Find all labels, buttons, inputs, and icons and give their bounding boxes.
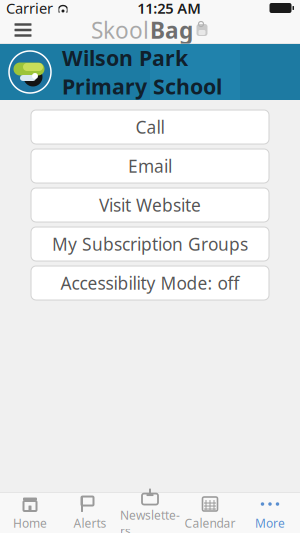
staticText: Carrier [6, 0, 53, 18]
staticText: 11:25 AM [137, 0, 201, 18]
button[interactable]: Home [0, 493, 60, 533]
button[interactable]: My Subscription Groups [31, 227, 269, 261]
staticText: Visit Website [99, 193, 201, 216]
button[interactable]: Newsletters [120, 493, 180, 533]
staticText: Accessibility Mode: off [60, 271, 239, 294]
button[interactable]: Alerts [60, 493, 120, 533]
staticText: Skool [91, 15, 149, 45]
staticText: Alerts [73, 515, 106, 531]
staticText: Newsletters [120, 507, 180, 533]
button[interactable]: Email [31, 149, 269, 183]
button[interactable]: More [240, 493, 300, 533]
staticText: Calendar [184, 515, 235, 531]
button[interactable]: Calendar [180, 493, 240, 533]
button[interactable]: Call [31, 110, 269, 144]
staticText: Home [13, 515, 47, 531]
button[interactable]: Accessibility Mode: off [31, 266, 269, 300]
staticText: Wilson Park Primary School [62, 44, 222, 100]
staticText: More [255, 515, 285, 531]
staticText: My Subscription Groups [52, 232, 248, 255]
button[interactable]: Visit Website [31, 188, 269, 222]
button[interactable]: Menu [4, 16, 42, 44]
staticText: Email [128, 154, 172, 177]
staticText: Call [135, 115, 164, 138]
staticText: Bag [150, 15, 193, 45]
